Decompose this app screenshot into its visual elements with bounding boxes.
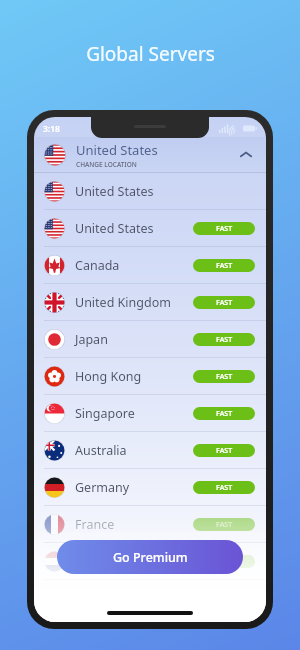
staticText: Hong Kong [75, 368, 142, 385]
staticText: 3:18 [43, 123, 60, 135]
other: Collapse [237, 146, 255, 164]
button[interactable]: United States [34, 210, 266, 247]
staticText: FAST [216, 520, 233, 530]
staticText: FAST [216, 261, 233, 271]
staticText: Japan [75, 331, 108, 348]
button[interactable]: Canada [34, 247, 266, 284]
staticText: CHANGE LOCATION [76, 160, 137, 169]
button[interactable]: Australia [34, 432, 266, 469]
button[interactable]: United Kingdom [34, 284, 266, 321]
button[interactable]: Netherlands [34, 543, 266, 580]
button[interactable]: France [34, 506, 266, 543]
staticText: Global Servers [86, 41, 215, 67]
staticText: FAST [216, 483, 233, 493]
staticText: Germany [75, 479, 130, 496]
staticText: FAST [216, 446, 233, 456]
button[interactable]: Singapore [34, 395, 266, 432]
staticText: FAST [216, 298, 233, 308]
button[interactable]: United States [34, 137, 266, 173]
button[interactable]: United States [34, 173, 266, 210]
staticText: FAST [216, 372, 233, 382]
button[interactable]: Go Premium [57, 540, 243, 574]
staticText: Netherlands [75, 553, 148, 570]
staticText: Australia [75, 442, 127, 459]
button[interactable]: Japan [34, 321, 266, 358]
staticText: FAST [216, 224, 233, 234]
button[interactable]: Germany [34, 469, 266, 506]
staticText: United States [75, 220, 154, 237]
staticText: Go Premium [113, 549, 188, 566]
staticText: FAST [216, 409, 233, 419]
staticText: France [75, 516, 115, 533]
staticText: Canada [75, 257, 120, 274]
staticText: Singapore [75, 405, 135, 422]
staticText: FAST [216, 335, 233, 345]
staticText: United States [76, 141, 158, 159]
button[interactable]: Hong Kong [34, 358, 266, 395]
staticText: United Kingdom [75, 294, 171, 311]
staticText: United States [75, 183, 154, 200]
